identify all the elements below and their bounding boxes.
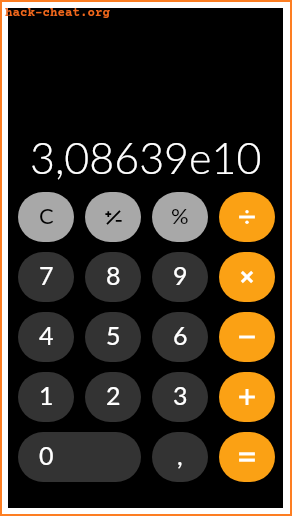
button[interactable]: 4 bbox=[18, 312, 74, 362]
button[interactable]: Subtract bbox=[219, 312, 275, 362]
button[interactable]: Divide bbox=[219, 192, 275, 242]
staticText: 8 bbox=[106, 260, 121, 290]
staticText: 9 bbox=[173, 260, 188, 290]
button[interactable]: 0 bbox=[18, 432, 141, 482]
button[interactable]: 5 bbox=[85, 312, 141, 362]
staticText: 7 bbox=[39, 260, 54, 290]
button[interactable]: 1 bbox=[18, 372, 74, 422]
staticText: 0 bbox=[39, 440, 54, 470]
staticText: 5 bbox=[106, 320, 121, 350]
button[interactable]: 8 bbox=[85, 252, 141, 302]
button[interactable]: Toggle sign bbox=[85, 192, 141, 242]
staticText: 1 bbox=[39, 380, 54, 410]
button[interactable]: 9 bbox=[152, 252, 208, 302]
button[interactable]: 3 bbox=[152, 372, 208, 422]
button[interactable]: % bbox=[152, 192, 208, 242]
staticText: 6 bbox=[173, 320, 188, 350]
staticText: 3 bbox=[173, 380, 188, 410]
button[interactable]: Equals bbox=[219, 432, 275, 482]
staticText: % bbox=[171, 202, 189, 228]
button[interactable]: 6 bbox=[152, 312, 208, 362]
button[interactable]: , bbox=[152, 432, 208, 482]
staticText: 2 bbox=[106, 380, 121, 410]
button[interactable]: 7 bbox=[18, 252, 74, 302]
button[interactable]: Add bbox=[219, 372, 275, 422]
button[interactable]: C bbox=[18, 192, 74, 242]
button[interactable]: Multiply bbox=[219, 252, 275, 302]
staticText: 3,08639e10 bbox=[30, 132, 262, 184]
staticText: hack-cheat.org bbox=[5, 6, 110, 20]
button[interactable]: 2 bbox=[85, 372, 141, 422]
staticText: , bbox=[177, 440, 183, 470]
staticText: C bbox=[39, 202, 54, 228]
staticText: 4 bbox=[39, 320, 54, 350]
